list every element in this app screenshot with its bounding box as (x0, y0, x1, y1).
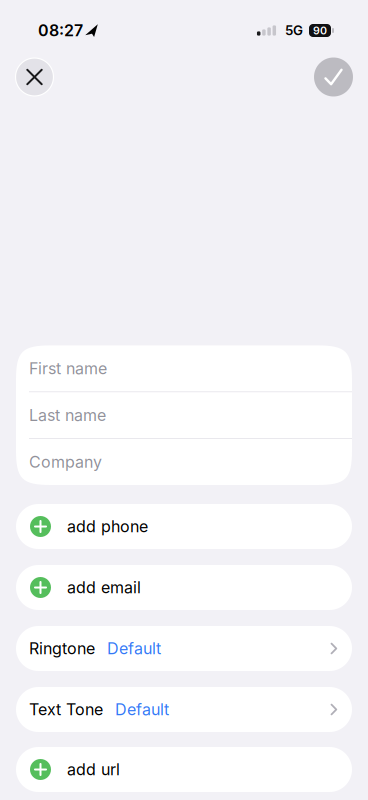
button[interactable]: add url (16, 747, 352, 792)
button[interactable]: First name (16, 345, 352, 391)
button[interactable]: add email (16, 565, 352, 610)
staticText: Last name (29, 406, 106, 425)
staticText: Company (29, 453, 102, 471)
button[interactable]: Cancel (15, 57, 54, 96)
staticText: add url (67, 760, 120, 779)
button[interactable]: Last name (16, 392, 352, 438)
button[interactable]: Ringtone (16, 626, 352, 671)
staticText: add phone (67, 517, 148, 536)
button[interactable]: Done (314, 57, 353, 96)
button[interactable]: Text Tone (16, 687, 352, 732)
button[interactable]: Company (16, 439, 352, 485)
staticText: 5G (285, 23, 303, 38)
button[interactable]: add phone (16, 504, 352, 549)
staticText: Ringtone (29, 639, 95, 658)
staticText: 08:27 (38, 21, 83, 40)
staticText: Default (115, 700, 169, 719)
staticText: add email (67, 578, 141, 597)
staticText: First name (29, 359, 107, 378)
staticText: 90 (313, 24, 327, 37)
staticText: Text Tone (29, 700, 103, 719)
staticText: Default (107, 639, 161, 658)
